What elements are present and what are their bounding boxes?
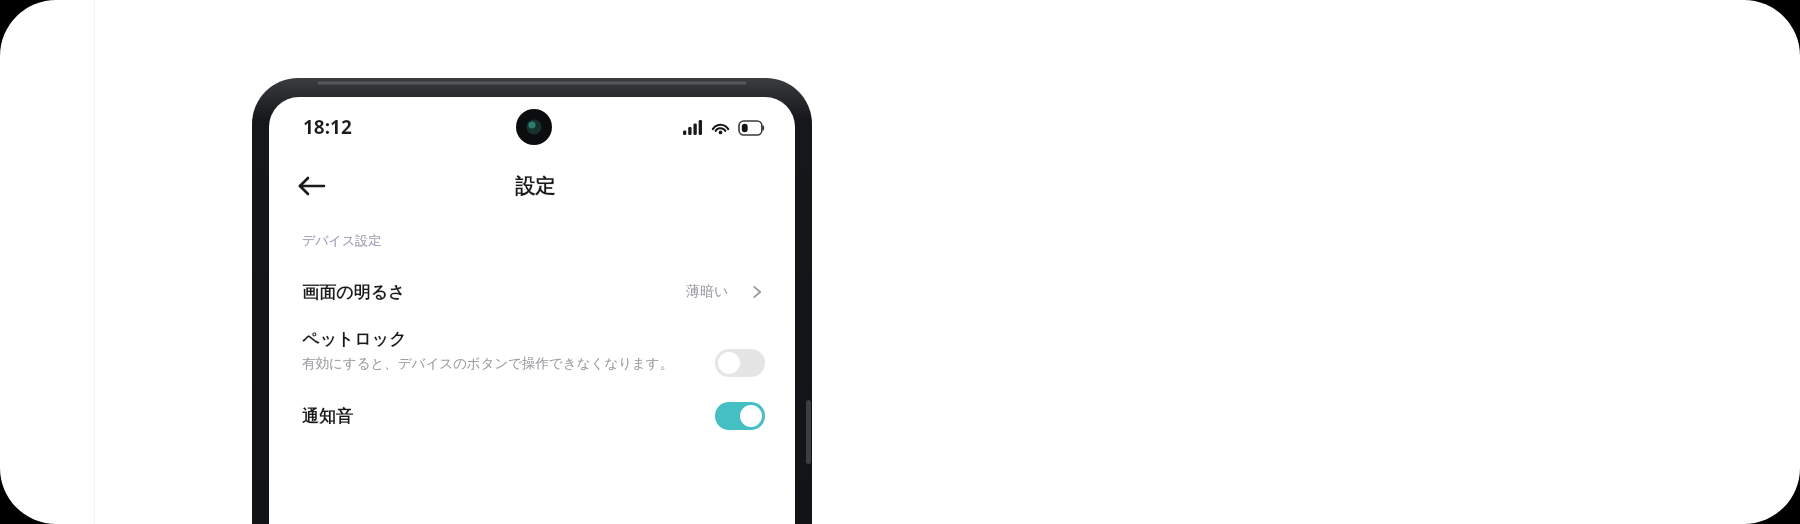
staticText: 18:12 — [303, 114, 352, 140]
staticText: ペットロック — [302, 329, 407, 350]
button[interactable]: ペットロック — [269, 321, 795, 387]
staticText: 薄暗い — [686, 283, 729, 301]
button[interactable]: On — [715, 402, 765, 430]
button[interactable]: 通知音 — [269, 387, 795, 445]
staticText: 画面の明るさ — [302, 282, 406, 303]
button[interactable]: Back — [291, 165, 333, 207]
button[interactable]: Off — [715, 349, 765, 377]
button[interactable]: 画面の明るさ — [269, 263, 795, 321]
staticText: 有効にすると、デバイスのボタンで操作できなくなります。 — [302, 355, 674, 372]
staticText: 通知音 — [302, 406, 353, 427]
staticText: 設定 — [515, 174, 555, 199]
staticText: デバイス設定 — [302, 232, 382, 248]
